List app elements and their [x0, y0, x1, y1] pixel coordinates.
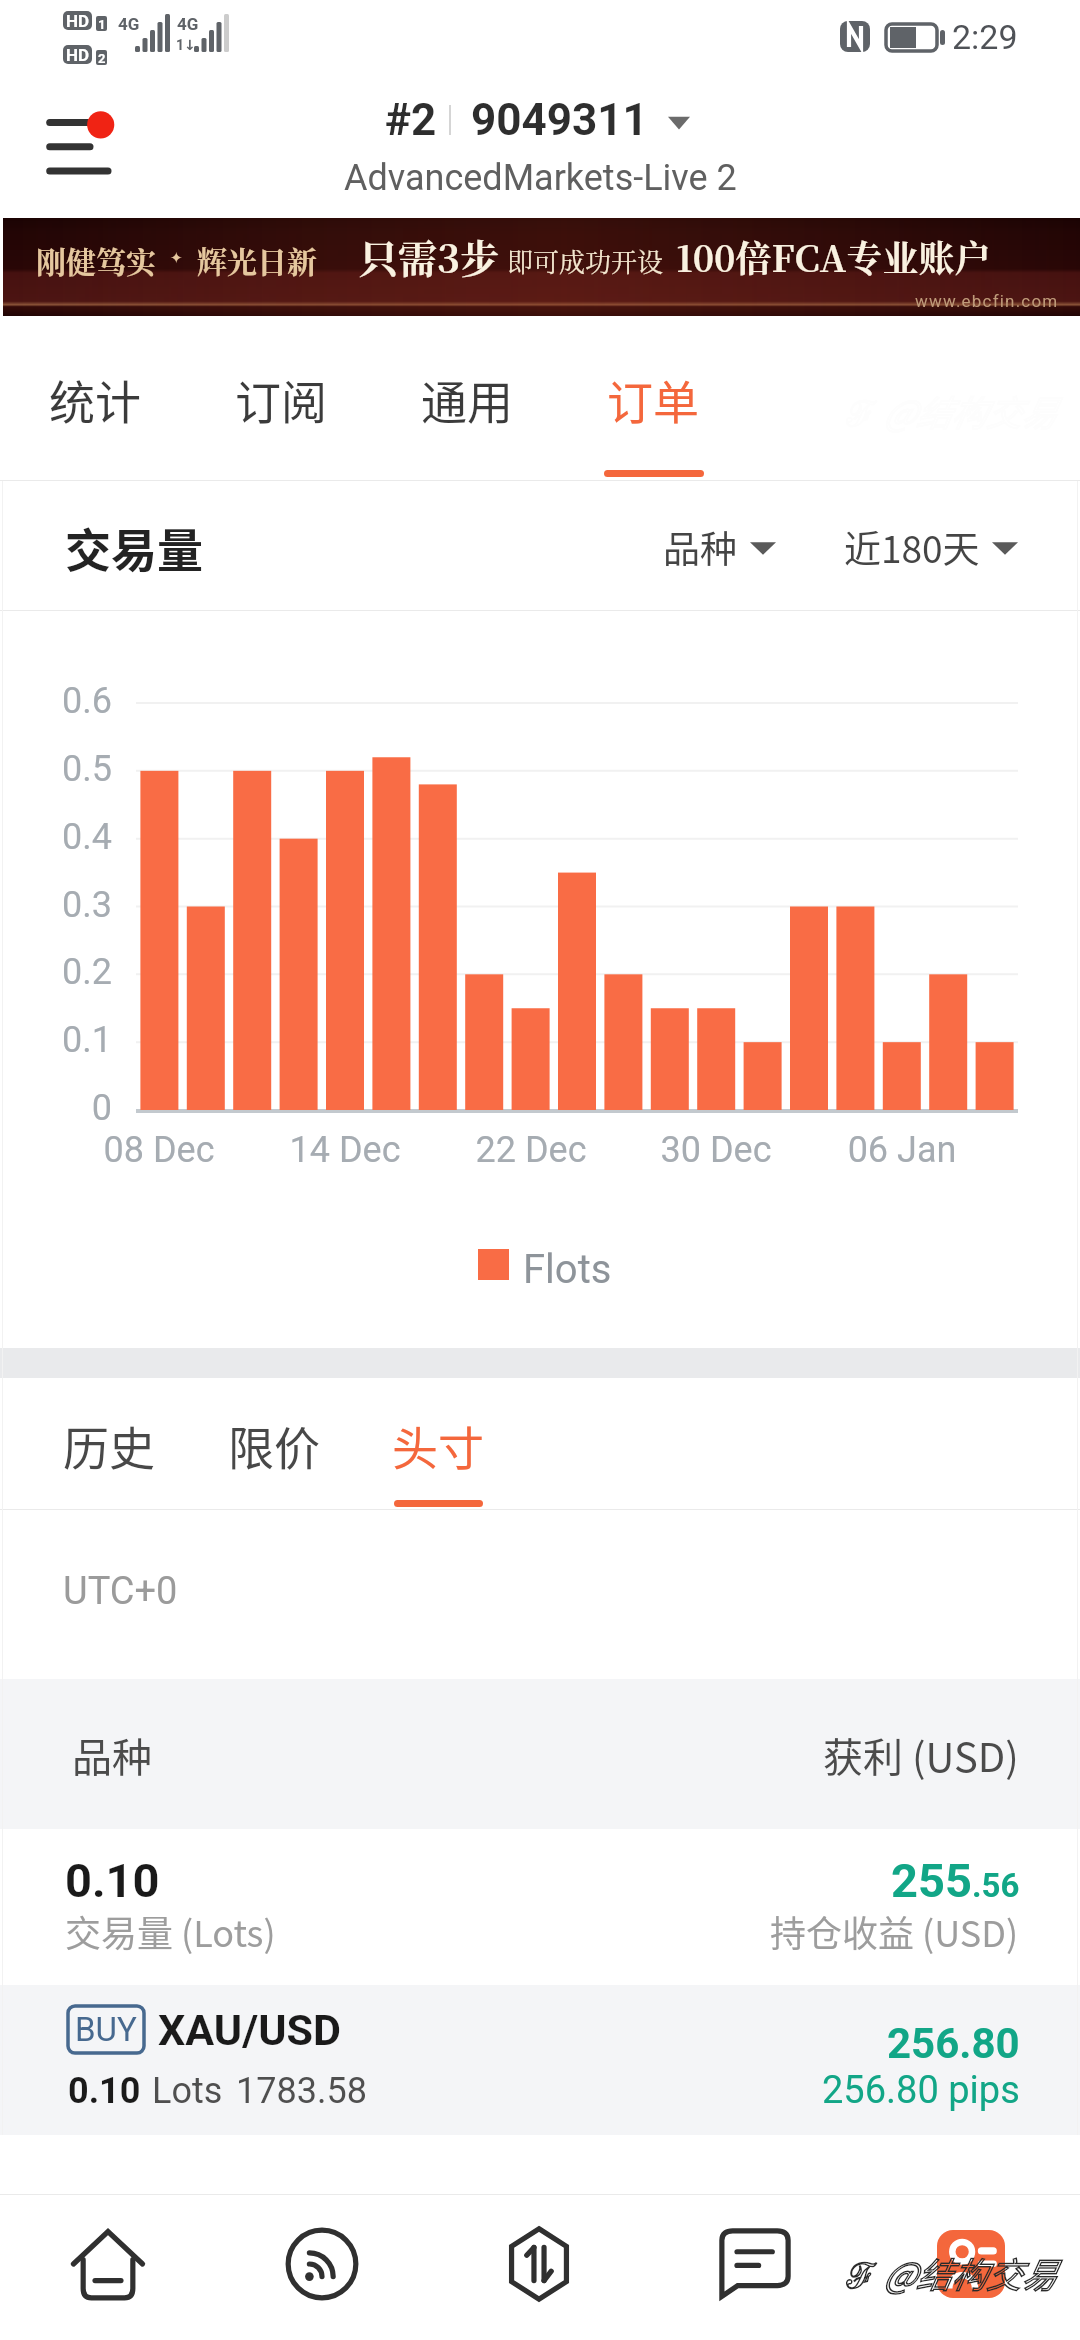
button[interactable]: Trade [479, 2204, 599, 2324]
staticText: Flots [523, 1246, 612, 1293]
staticText: 0.1 [0, 1019, 112, 1061]
staticText: BUY [75, 2010, 137, 2049]
staticText: 4G [177, 14, 199, 34]
staticText: 0.3 [0, 884, 112, 926]
staticText: 2:29 [952, 17, 1018, 57]
staticText: 获利 (USD) [823, 1726, 1019, 1784]
button[interactable]: 品种 [663, 520, 776, 574]
staticText: UTC+0 [63, 1569, 178, 1614]
button[interactable]: Home [48, 2204, 168, 2324]
staticText: 08 Dec [69, 1129, 249, 1171]
staticText: 辉光日新 [197, 238, 317, 281]
button[interactable]: Menu [36, 108, 126, 198]
button[interactable]: 通用 [374, 316, 560, 481]
button[interactable]: 订阅 [188, 316, 374, 481]
staticText: 即可成功开设 [507, 242, 664, 279]
button[interactable]: Scan [911, 2204, 1031, 2324]
button[interactable]: BUY [0, 1985, 1080, 2135]
button[interactable]: 限价 [192, 1378, 356, 1510]
staticText: 统计 [49, 366, 141, 433]
staticText: 256.80 [887, 2019, 1020, 2068]
staticText: 历史 [63, 1412, 155, 1479]
staticText: Lots [152, 2070, 223, 2112]
staticText: ℱ @结构交易 [846, 2247, 1056, 2298]
staticText: 交易量 (Lots) [65, 1905, 276, 1957]
staticText: HD [66, 45, 90, 65]
staticText: 限价 [228, 1412, 320, 1479]
staticText: 9049311 [471, 94, 648, 146]
button[interactable]: 刚健笃实 [3, 218, 1080, 316]
staticText: 0.2 [0, 951, 112, 993]
staticText: 头寸 [392, 1412, 484, 1479]
staticText: 订单 [607, 366, 699, 433]
button[interactable]: Chat [695, 2204, 815, 2324]
staticText: 100倍FCA专业账户 [676, 231, 991, 283]
staticText: 1783.58 [236, 2070, 367, 2112]
staticText: 255 [891, 1853, 972, 1908]
staticText: 1 [98, 17, 106, 32]
staticText: 品种 [663, 520, 737, 574]
staticText: 交易量 [65, 514, 203, 581]
button[interactable]: 统计 [2, 316, 188, 481]
staticText: 近180天 [844, 520, 980, 574]
button[interactable]: Quotes [262, 2204, 382, 2324]
staticText: 30 Dec [626, 1129, 806, 1171]
staticText: HD [66, 11, 90, 31]
staticText: 品种 [72, 1726, 152, 1784]
staticText: 256.80 pips [822, 2068, 1020, 2113]
staticText: 只需3步 [359, 228, 500, 284]
staticText: 0.10 [68, 2070, 141, 2112]
staticText: 刚健笃实 [36, 238, 156, 281]
staticText: 0 [0, 1087, 112, 1129]
staticText: 0.10 [65, 1853, 160, 1908]
staticText: #2 [385, 94, 437, 146]
staticText: 0.5 [0, 748, 112, 790]
staticText: 4G [118, 14, 140, 34]
button[interactable]: 头寸 [356, 1378, 520, 1510]
staticText: 22 Dec [441, 1129, 621, 1171]
staticText: ✦ [170, 249, 183, 266]
staticText: 通用 [421, 366, 513, 433]
staticText: .56 [972, 1866, 1020, 1905]
staticText: AdvancedMarkets-Live 2 [344, 157, 737, 199]
staticText: 06 Jan [812, 1129, 992, 1171]
staticText: 0.6 [0, 680, 112, 722]
staticText: 14 Dec [255, 1129, 435, 1171]
button[interactable]: 近180天 [844, 520, 1018, 574]
staticText: 持仓收益 (USD) [770, 1905, 1019, 1957]
button[interactable]: 订单 [560, 316, 746, 481]
staticText: www.ebcfin.com [915, 291, 1059, 311]
staticText: 2 [98, 51, 106, 66]
button[interactable]: 历史 [27, 1378, 191, 1510]
staticText: 0.4 [0, 816, 112, 858]
staticText: 订阅 [235, 366, 327, 433]
staticText: XAU/USD [158, 2005, 341, 2055]
staticText: 1↓ [176, 37, 196, 53]
